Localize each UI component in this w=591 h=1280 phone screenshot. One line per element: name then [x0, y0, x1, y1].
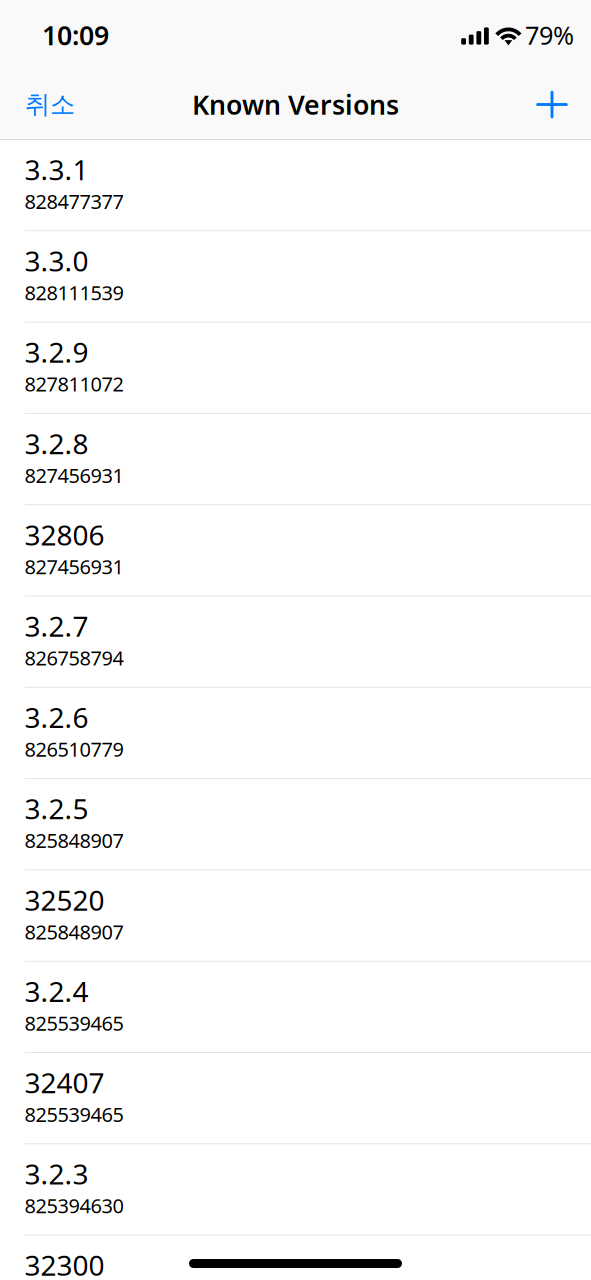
button[interactable]: 32806: [0, 505, 591, 596]
staticText: 825848907: [24, 827, 123, 854]
staticText: 취소: [25, 89, 75, 120]
staticText: 827456931: [24, 553, 123, 580]
staticText: 3.2.8: [24, 425, 88, 462]
button[interactable]: 3.2.5: [0, 779, 591, 870]
button[interactable]: 3.2.3: [0, 1144, 591, 1236]
staticText: 825539465: [24, 1010, 123, 1036]
button[interactable]: 3.3.0: [0, 231, 591, 323]
staticText: Known Versions: [192, 87, 399, 122]
staticText: 79%: [525, 18, 574, 52]
staticText: 826510779: [24, 736, 123, 762]
staticText: 825848907: [24, 918, 123, 945]
staticText: 3.2.5: [24, 790, 88, 827]
button[interactable]: 3.3.1: [0, 140, 591, 231]
staticText: 3.3.0: [24, 242, 88, 279]
button[interactable]: 32300: [0, 1236, 591, 1280]
button[interactable]: 취소: [0, 70, 95, 139]
staticText: 3.2.3: [24, 1155, 88, 1192]
button[interactable]: 3.2.6: [0, 688, 591, 779]
button[interactable]: 3.2.9: [0, 323, 591, 414]
staticText: 32300: [24, 1246, 104, 1280]
staticText: 3.2.4: [24, 972, 88, 1010]
staticText: 825539465: [24, 1101, 123, 1128]
staticText: 827456931: [24, 462, 123, 488]
staticText: 828111539: [24, 279, 123, 306]
staticText: 3.2.7: [24, 607, 88, 644]
staticText: 827811072: [24, 371, 123, 397]
staticText: 32520: [24, 881, 104, 918]
staticText: 826758794: [24, 644, 123, 671]
staticText: 32806: [24, 516, 104, 553]
staticText: 3.3.1: [24, 151, 88, 188]
staticText: 3.2.9: [24, 333, 88, 371]
staticText: 825394630: [24, 1192, 123, 1219]
button[interactable]: Add version: [514, 70, 591, 139]
button[interactable]: 32407: [0, 1053, 591, 1144]
staticText: 828477377: [24, 188, 123, 215]
staticText: 10:09: [42, 17, 109, 53]
button[interactable]: 3.2.7: [0, 596, 591, 688]
staticText: 3.2.6: [24, 699, 88, 736]
staticText: 32407: [24, 1064, 104, 1101]
button[interactable]: 3.2.8: [0, 414, 591, 505]
button[interactable]: 3.2.4: [0, 962, 591, 1053]
button[interactable]: 32520: [0, 870, 591, 962]
